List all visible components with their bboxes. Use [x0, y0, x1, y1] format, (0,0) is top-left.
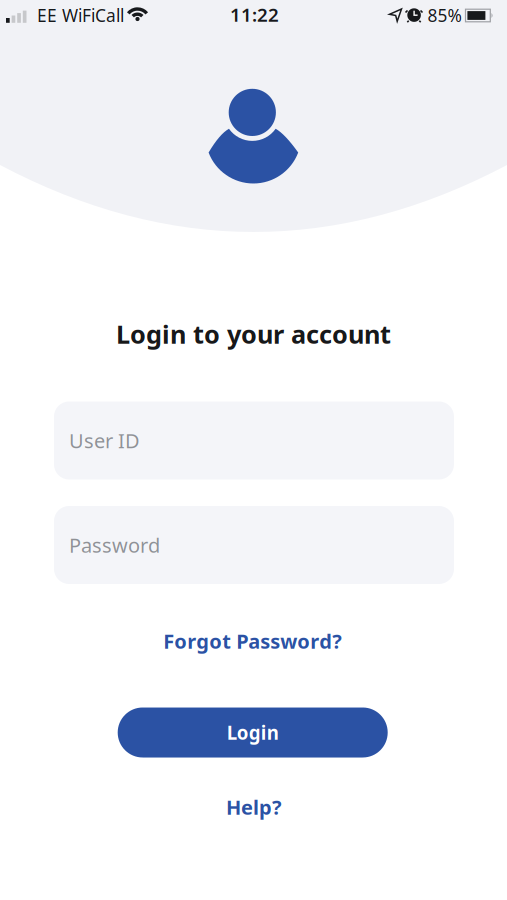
button[interactable]: Login [118, 707, 388, 757]
staticText: Login to your account [116, 317, 391, 351]
staticText: Help? [226, 794, 282, 820]
staticText: EE WiFiCall [37, 4, 124, 27]
button[interactable]: Forgot Password? [163, 628, 342, 654]
button[interactable]: Password [54, 506, 454, 584]
button[interactable]: User ID [54, 401, 454, 479]
staticText: Forgot Password? [163, 628, 342, 654]
staticText: 11:22 [230, 2, 279, 27]
staticText: Login [227, 720, 279, 745]
staticText: Password [69, 532, 160, 558]
staticText: User ID [69, 427, 140, 454]
button[interactable]: Help? [226, 794, 282, 820]
staticText: 85% [427, 4, 461, 27]
